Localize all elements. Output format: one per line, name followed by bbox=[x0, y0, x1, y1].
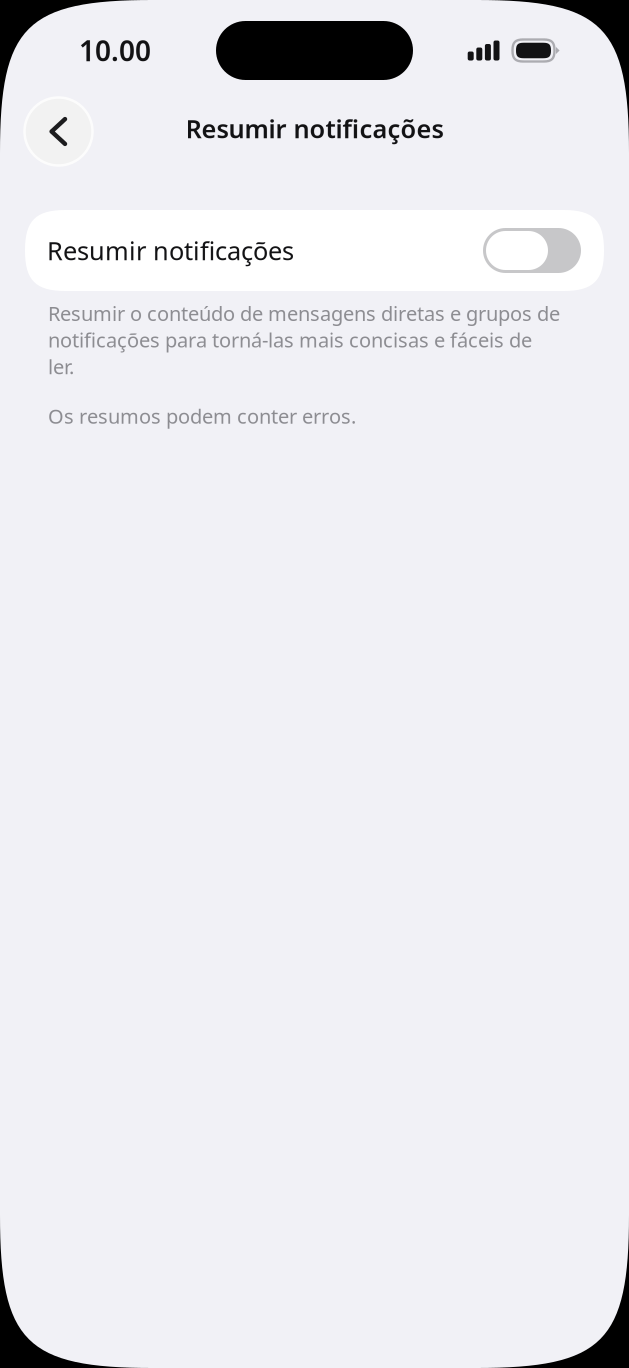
staticText: 10.00 bbox=[79, 32, 151, 69]
staticText: Resumir notificações bbox=[185, 112, 443, 145]
staticText: Resumir notificações bbox=[47, 234, 294, 267]
button[interactable]: Resumir notificações bbox=[25, 210, 604, 291]
staticText: Os resumos podem conter erros. bbox=[48, 403, 356, 429]
staticText: Resumir o conteúdo de mensagens diretas … bbox=[48, 300, 560, 380]
button[interactable]: Back bbox=[24, 97, 93, 166]
